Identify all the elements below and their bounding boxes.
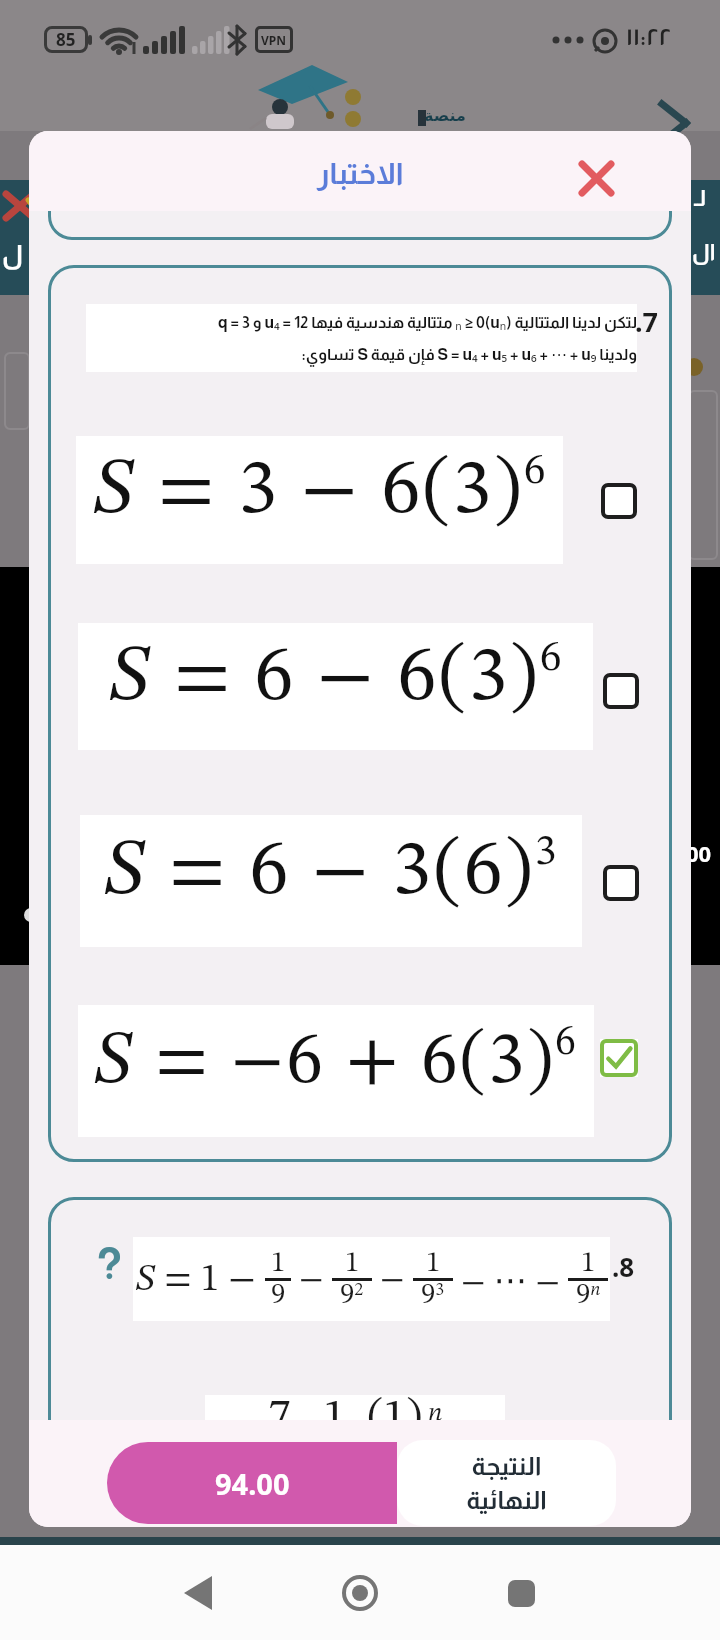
staticText: ال <box>692 240 716 265</box>
staticText: 9n <box>576 1281 601 1310</box>
staticText: الاختبار <box>317 157 404 190</box>
staticText: ‎.7 <box>635 303 659 340</box>
button[interactable]: S = 6 − 6(3)6 <box>78 623 593 750</box>
button[interactable] <box>603 673 639 709</box>
staticText: 9 <box>271 1281 286 1310</box>
staticText: 1 <box>581 1249 596 1278</box>
button[interactable] <box>601 483 637 519</box>
staticText: ١١:٢٢ <box>626 24 672 50</box>
staticText: النتيجة النهائية <box>466 1452 547 1515</box>
staticText: S = 6 − 6(3)6 <box>108 636 564 718</box>
staticText: VPN <box>261 32 287 48</box>
staticText: لتكن لدينا المتتالية (uₙ)ₙ ≥ 0 متتالية ه… <box>86 311 637 365</box>
staticText: 00 <box>686 838 712 868</box>
staticText: 92 <box>340 1281 364 1310</box>
staticText: − <box>372 1263 413 1297</box>
button[interactable] <box>508 1580 535 1607</box>
button[interactable]: 94.00 <box>107 1442 397 1524</box>
staticText: S = 3 − 6(3)6 <box>92 449 548 531</box>
staticText: 85 <box>56 28 76 51</box>
staticText: 1 <box>345 1249 360 1278</box>
staticText: 93 <box>421 1281 445 1310</box>
staticText: 7 1 (1) n <box>268 1395 443 1441</box>
staticText: S = −6 + 6(3)6 <box>93 1022 579 1100</box>
button[interactable] <box>658 100 690 146</box>
button[interactable]: S = −6 + 6(3)6 <box>78 1005 594 1137</box>
staticText: لـ <box>694 186 706 211</box>
button[interactable] <box>342 1575 378 1611</box>
staticText: 94.00 <box>215 1464 290 1503</box>
button[interactable]: S = 3 − 6(3)6 <box>76 436 563 564</box>
staticText: S = 6 − 3(6)3 <box>103 830 559 912</box>
staticText: منصة <box>424 106 466 125</box>
button[interactable] <box>184 1576 212 1610</box>
staticText: ل <box>2 240 23 269</box>
staticText: − ⋯ − <box>453 1260 568 1300</box>
button[interactable] <box>600 1039 638 1077</box>
button[interactable] <box>603 865 639 901</box>
staticText: ? <box>96 1239 123 1288</box>
staticText: ‎.8 <box>612 1249 635 1284</box>
staticText: − <box>291 1263 332 1297</box>
staticText: S = 1 − <box>135 1261 265 1299</box>
staticText: 1 <box>271 1249 286 1278</box>
button[interactable]: S = 6 − 3(6)3 <box>80 815 582 947</box>
staticText: 1 <box>426 1249 441 1278</box>
button[interactable] <box>575 157 617 199</box>
button[interactable]: النتيجة النهائية <box>397 1440 616 1526</box>
